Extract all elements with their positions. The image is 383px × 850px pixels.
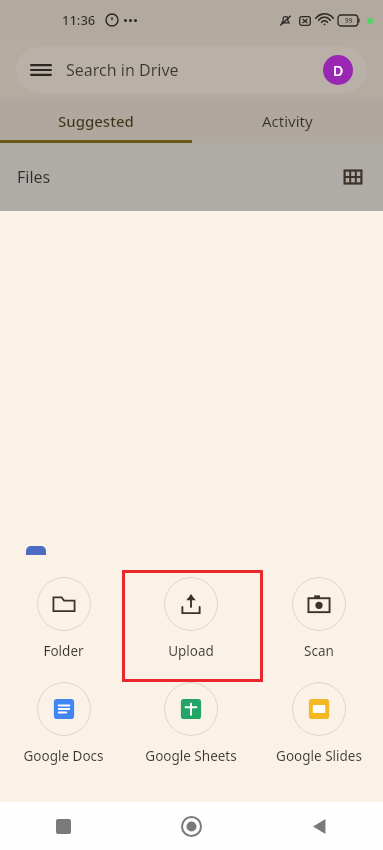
button[interactable]: Menu	[16, 47, 367, 93]
staticText: 11:36	[62, 11, 96, 29]
button[interactable]: Google Sheets	[127, 678, 255, 769]
staticText: D	[333, 61, 344, 80]
staticText: Search in Drive	[66, 59, 179, 81]
staticText: Google Docs	[23, 747, 104, 765]
staticText: Upload	[168, 642, 214, 660]
staticText: Suggested	[58, 111, 134, 131]
staticText: Google Slides	[276, 747, 362, 765]
button[interactable]: Google Docs	[0, 678, 127, 769]
staticText: 99	[345, 16, 353, 25]
button[interactable]: Suggested	[0, 99, 191, 143]
button[interactable]: Google Slides	[255, 678, 383, 769]
button[interactable]: Account	[323, 55, 353, 85]
button[interactable]: Grid view	[343, 167, 363, 187]
button[interactable]: Back	[255, 802, 383, 850]
staticText: Scan	[304, 642, 334, 660]
staticText: Activity	[262, 111, 313, 131]
button[interactable]: Home	[127, 802, 255, 850]
staticText: Files	[17, 166, 51, 188]
button[interactable]: Recents	[0, 802, 127, 850]
staticText: Folder	[43, 642, 84, 660]
button[interactable]: Upload	[127, 573, 255, 664]
other: Menu	[30, 59, 52, 81]
button[interactable]: Activity	[191, 99, 383, 143]
button[interactable]: Scan	[255, 573, 383, 664]
staticText: Google Sheets	[145, 747, 237, 765]
button[interactable]: Folder	[0, 573, 127, 664]
